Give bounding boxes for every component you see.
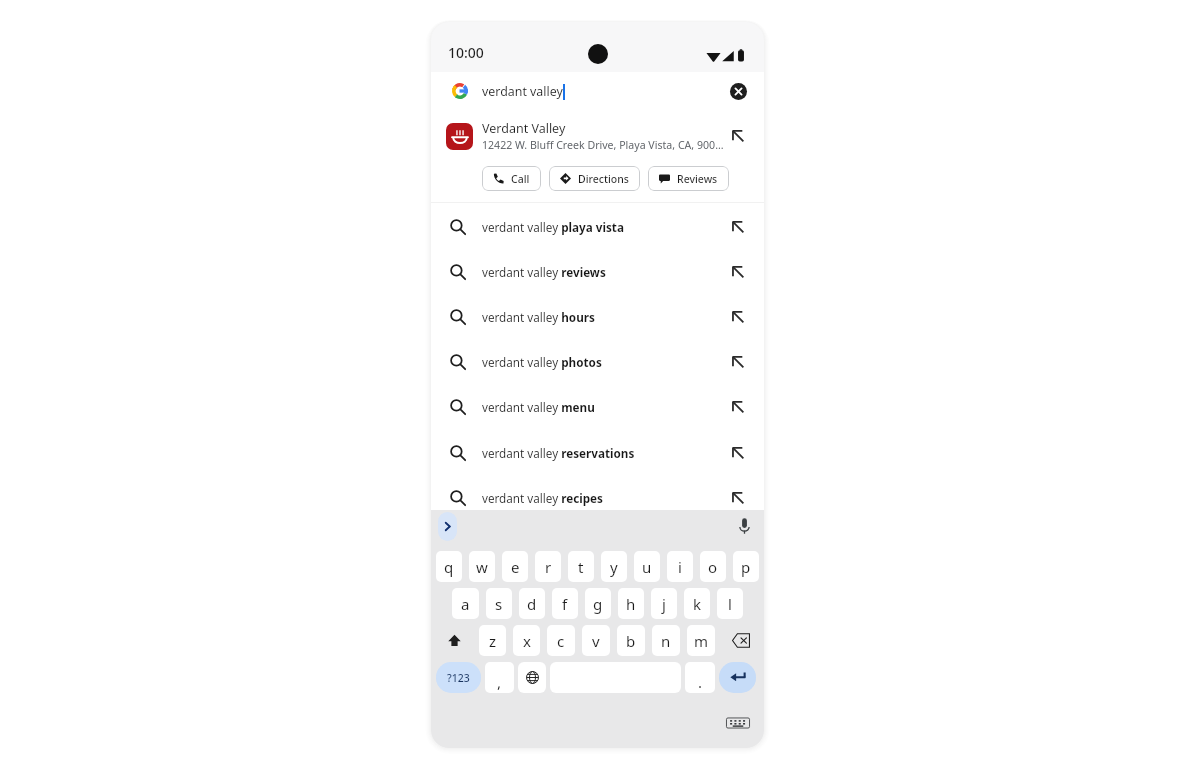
button[interactable]: Fill query xyxy=(726,486,750,510)
staticText: Call xyxy=(511,172,530,186)
button[interactable]: u xyxy=(634,551,660,582)
staticText: verdant valley reviews xyxy=(482,264,606,280)
staticText: f xyxy=(562,594,568,614)
button[interactable]: b xyxy=(617,625,645,656)
button[interactable]: i xyxy=(667,551,693,582)
button[interactable]: Call xyxy=(482,166,541,191)
button[interactable]: x xyxy=(513,625,540,656)
staticText: verdant valley hours xyxy=(482,309,595,325)
button[interactable]: g xyxy=(585,588,611,619)
button[interactable]: q xyxy=(436,551,462,582)
button[interactable]: verdant valley photos xyxy=(431,339,764,384)
button[interactable]: n xyxy=(652,625,680,656)
button[interactable]: Fill query xyxy=(726,260,750,284)
staticText: , xyxy=(497,672,502,692)
staticText: verdant valley playa vista xyxy=(482,219,624,235)
button[interactable]: t xyxy=(568,551,594,582)
staticText: verdant valley menu xyxy=(482,399,595,415)
button[interactable]: d xyxy=(519,588,545,619)
staticText: v xyxy=(592,631,600,651)
staticText: verdant valley xyxy=(482,83,563,100)
staticText: h xyxy=(626,594,636,614)
button[interactable]: verdant valley playa vista xyxy=(431,204,764,249)
staticText: x xyxy=(523,631,531,651)
button[interactable]: Shift xyxy=(436,625,472,656)
staticText: c xyxy=(557,631,565,651)
staticText: Directions xyxy=(578,172,629,186)
button[interactable]: a xyxy=(452,588,479,619)
button[interactable]: m xyxy=(687,625,715,656)
staticText: verdant valley photos xyxy=(482,354,602,370)
button[interactable]: Voice input xyxy=(734,516,754,536)
button[interactable]: Directions xyxy=(549,166,640,191)
button[interactable]: j xyxy=(651,588,677,619)
staticText: verdant valley reservations xyxy=(482,445,635,461)
button[interactable]: l xyxy=(717,588,743,619)
staticText: r xyxy=(545,557,552,577)
staticText: q xyxy=(444,557,454,577)
button[interactable]: k xyxy=(684,588,710,619)
button[interactable]: y xyxy=(601,551,627,582)
button[interactable]: Verdant Valley xyxy=(431,120,764,152)
staticText: Reviews xyxy=(677,172,718,186)
button[interactable]: . xyxy=(685,662,715,693)
button[interactable]: Hide keyboard xyxy=(724,709,752,737)
staticText: t xyxy=(578,557,584,577)
staticText: l xyxy=(728,594,732,614)
staticText: m xyxy=(694,631,709,651)
staticText: p xyxy=(741,557,751,577)
button[interactable]: More suggestions xyxy=(438,512,457,541)
button[interactable]: Backspace xyxy=(722,625,759,656)
button[interactable]: verdant valley hours xyxy=(431,294,764,339)
button[interactable]: o xyxy=(700,551,726,582)
button[interactable]: Fill query xyxy=(726,395,750,419)
staticText: i xyxy=(678,557,682,577)
staticText: Verdant Valley xyxy=(482,120,566,137)
button[interactable]: , xyxy=(485,662,514,693)
staticText: 10:00 xyxy=(448,43,484,62)
staticText: u xyxy=(642,557,652,577)
button[interactable]: s xyxy=(486,588,512,619)
button[interactable]: verdant valley reservations xyxy=(431,430,764,475)
staticText: 12422 W. Bluff Creek Drive, Playa Vista,… xyxy=(482,138,724,152)
button[interactable]: w xyxy=(469,551,495,582)
button[interactable]: Enter xyxy=(719,662,756,693)
button[interactable]: h xyxy=(618,588,644,619)
staticText: z xyxy=(489,631,497,651)
staticText: o xyxy=(708,557,718,577)
staticText: b xyxy=(626,631,636,651)
button[interactable]: Fill query xyxy=(726,305,750,329)
button[interactable]: c xyxy=(547,625,575,656)
button[interactable]: v xyxy=(582,625,610,656)
button[interactable]: f xyxy=(552,588,578,619)
staticText: d xyxy=(527,594,537,614)
button[interactable]: Fill query xyxy=(726,441,750,465)
button[interactable]: verdant valley reviews xyxy=(431,249,764,294)
staticText: ?123 xyxy=(447,671,470,685)
button[interactable]: ?123 xyxy=(436,662,481,693)
staticText: j xyxy=(662,594,666,614)
button[interactable]: z xyxy=(479,625,506,656)
button[interactable]: verdant valley menu xyxy=(431,384,764,429)
staticText: k xyxy=(693,594,702,614)
staticText: n xyxy=(661,631,671,651)
button[interactable]: verdant valley recipes xyxy=(431,475,764,520)
staticText: . xyxy=(698,672,703,692)
button[interactable]: verdant valley xyxy=(431,72,764,110)
staticText: s xyxy=(495,594,503,614)
button[interactable]: Reviews xyxy=(648,166,729,191)
button[interactable]: Change language xyxy=(518,662,546,693)
staticText: e xyxy=(511,557,520,577)
button[interactable]: p xyxy=(733,551,759,582)
staticText: a xyxy=(461,594,470,614)
button[interactable]: e xyxy=(502,551,528,582)
staticText: g xyxy=(593,594,603,614)
button[interactable]: Fill query xyxy=(726,350,750,374)
staticText: y xyxy=(610,557,618,577)
button[interactable]: Fill query xyxy=(726,124,750,148)
button[interactable]: r xyxy=(535,551,561,582)
button[interactable]: Fill query xyxy=(726,215,750,239)
staticText: w xyxy=(476,557,488,577)
button[interactable]: Clear search xyxy=(723,76,753,106)
